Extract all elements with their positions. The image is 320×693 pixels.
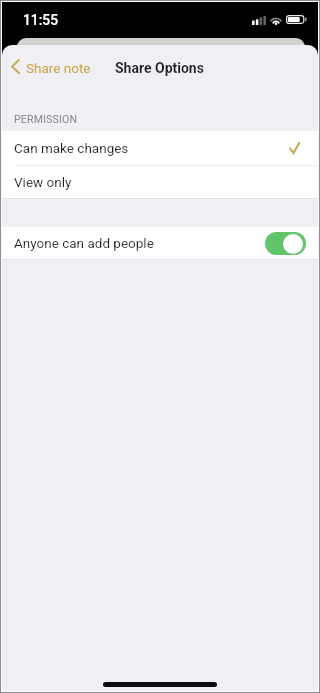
staticText: PERMISSION — [14, 113, 78, 125]
staticText: View only — [14, 174, 72, 190]
staticText: Can make changes — [14, 140, 129, 156]
staticText: Share note — [26, 60, 91, 76]
staticText: 11:55 — [23, 12, 59, 28]
staticText: Share Options — [115, 60, 204, 76]
button[interactable]: View only — [2, 166, 318, 198]
staticText: Anyone can add people — [14, 235, 154, 251]
other: Selected — [289, 142, 300, 154]
button[interactable]: Anyone can add people — [2, 227, 318, 259]
button[interactable]: Can make changes — [2, 131, 318, 165]
button[interactable]: Anyone can add people toggle — [265, 232, 306, 255]
button[interactable]: Share note — [2, 53, 99, 81]
